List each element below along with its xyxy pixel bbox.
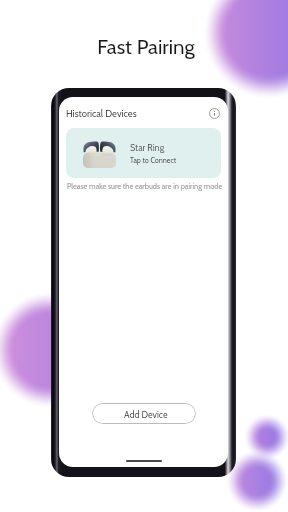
staticText: Fast Pairing bbox=[2, 34, 288, 59]
button[interactable]: Information bbox=[208, 107, 221, 120]
button[interactable]: Add Device bbox=[92, 403, 196, 424]
staticText: Tap to Connect bbox=[130, 156, 177, 165]
staticText: Please make sure the earbuds are in pair… bbox=[67, 182, 223, 191]
staticText: Star Ring bbox=[130, 142, 165, 153]
button[interactable]: Star Ring bbox=[66, 128, 221, 178]
staticText: Add Device bbox=[124, 409, 168, 420]
staticText: Historical Devices bbox=[66, 108, 137, 120]
